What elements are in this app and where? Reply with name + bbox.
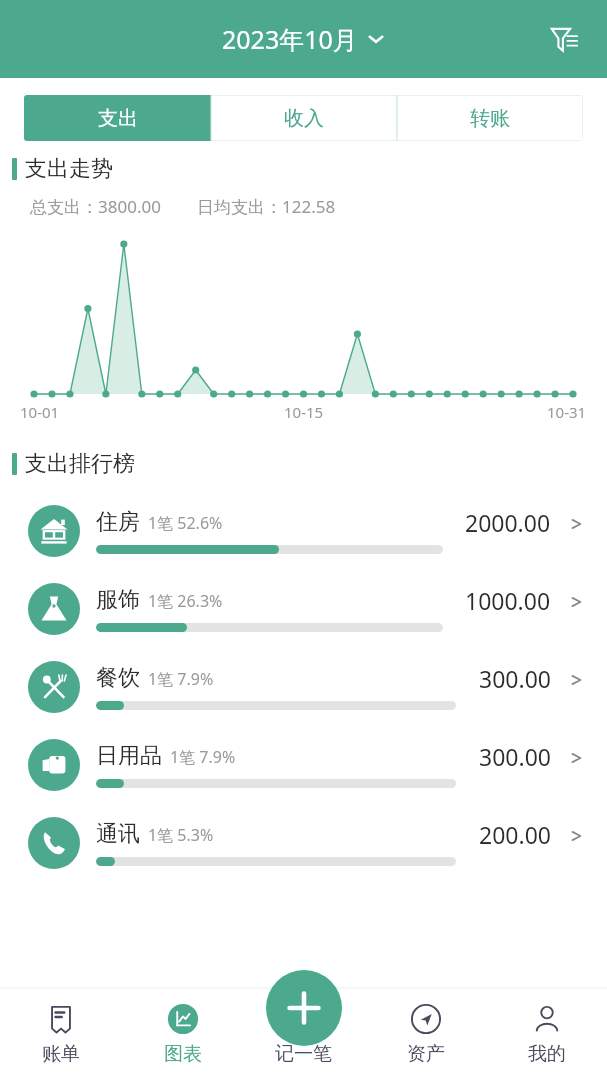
staticText: 资产 <box>407 1042 445 1066</box>
staticText: 1笔 52.6% <box>148 512 223 534</box>
staticText: 1笔 7.9% <box>170 746 236 768</box>
staticText: 1笔 5.3% <box>148 824 214 846</box>
staticText: 住房 <box>96 508 140 536</box>
staticText: 转账 <box>470 106 510 131</box>
button[interactable]: 图表 <box>122 988 244 1080</box>
staticText: 200.00 <box>479 819 551 850</box>
button[interactable]: Filter <box>541 16 587 62</box>
button[interactable]: 资产 <box>365 988 486 1080</box>
staticText: 记一笔 <box>275 1042 332 1066</box>
staticText: 10-01 <box>20 402 60 422</box>
staticText: 300.00 <box>479 663 551 694</box>
staticText: 2000.00 <box>465 507 551 538</box>
staticText: 账单 <box>42 1042 80 1066</box>
staticText: 收入 <box>284 106 324 131</box>
staticText: 1笔 26.3% <box>148 590 223 612</box>
staticText: 1笔 7.9% <box>148 668 214 690</box>
staticText: 10-31 <box>547 402 587 422</box>
staticText: 支出排行榜 <box>25 450 135 478</box>
staticText: 1000.00 <box>465 585 551 616</box>
button[interactable]: 餐饮 <box>0 648 607 726</box>
staticText: 总支出：3800.00 <box>30 195 161 218</box>
button[interactable]: 服饰 <box>0 570 607 648</box>
staticText: 2023年10月 <box>222 22 358 56</box>
staticText: 10-15 <box>284 402 324 422</box>
staticText: 日用品 <box>96 742 162 770</box>
staticText: 300.00 <box>479 741 551 772</box>
staticText: 支出 <box>98 106 138 131</box>
button[interactable]: 2023年10月 <box>222 22 385 56</box>
staticText: 服饰 <box>96 586 140 614</box>
staticText: 日均支出：122.58 <box>197 195 336 218</box>
button[interactable]: 住房 <box>0 492 607 570</box>
staticText: 图表 <box>164 1042 202 1066</box>
button[interactable]: 通讯 <box>0 804 607 882</box>
button[interactable]: 转账 <box>397 95 583 141</box>
button[interactable]: 账单 <box>0 988 122 1080</box>
staticText: 餐饮 <box>96 664 140 692</box>
button[interactable]: 收入 <box>211 95 397 141</box>
button[interactable]: Add record <box>266 970 342 1046</box>
button[interactable]: 支出 <box>24 95 211 141</box>
staticText: 通讯 <box>96 820 140 848</box>
staticText: 支出走势 <box>25 155 113 183</box>
button[interactable]: 日用品 <box>0 726 607 804</box>
staticText: 我的 <box>528 1042 566 1066</box>
button[interactable]: 我的 <box>486 988 607 1080</box>
